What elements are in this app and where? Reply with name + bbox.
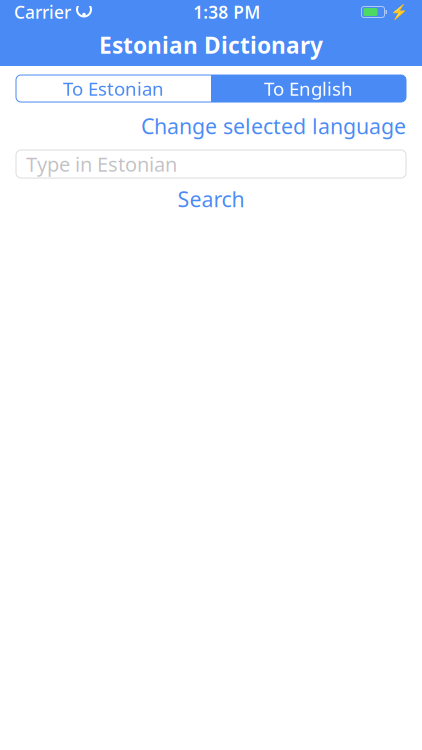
staticText: ⚡	[390, 4, 408, 20]
button[interactable]: Search	[16, 185, 406, 213]
staticText: To English	[264, 76, 353, 101]
staticText: To Estonian	[63, 76, 164, 101]
staticText: Carrier	[14, 0, 71, 23]
staticText: Type in Estonian	[26, 151, 177, 177]
button[interactable]: To English	[211, 75, 406, 102]
button[interactable]: Change selected language	[16, 111, 406, 141]
button[interactable]: To Estonian	[16, 75, 211, 102]
staticText: Estonian Dictionary	[99, 30, 323, 60]
button[interactable]: Type in Estonian	[16, 150, 406, 178]
staticText: Search	[177, 185, 244, 213]
staticText: Change selected language	[141, 112, 406, 140]
staticText: 1:38 PM	[193, 0, 260, 23]
